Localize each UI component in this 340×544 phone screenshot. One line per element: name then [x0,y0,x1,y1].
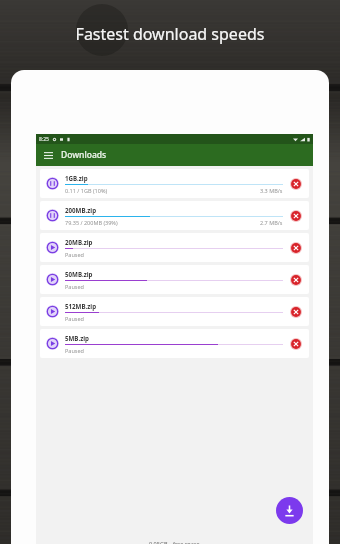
button[interactable]: Pause download [45,176,60,191]
button[interactable]: Pause download [45,208,60,223]
staticText: 20MB.zip [65,238,93,246]
button[interactable]: Cancel download [288,272,304,288]
staticText: Paused [65,251,84,258]
staticText: 0.11 / 1GB (10%) [65,187,108,194]
button[interactable]: Pause download [40,201,309,230]
staticText: Paused [65,315,84,322]
staticText: 79.35 / 200MB (39%) [65,219,118,226]
staticText: 8:25 [39,136,49,143]
staticText: 5MB.zip [65,334,89,342]
staticText: Paused [65,347,84,354]
button[interactable]: Resume download [45,304,60,319]
button[interactable]: Cancel download [288,336,304,352]
staticText: 50MB.zip [65,270,93,278]
staticText: Fastest download speeds [0,23,340,45]
button[interactable]: Resume download [40,265,309,294]
button[interactable]: Resume download [45,336,60,351]
button[interactable]: Resume download [40,329,309,358]
staticText: Paused [65,283,84,290]
button[interactable]: Cancel download [288,304,304,320]
staticText: 1GB.zip [65,174,88,182]
staticText: 3.3 MB/s [260,187,283,194]
staticText: Downloads [61,149,107,161]
button[interactable]: Cancel download [288,208,304,224]
button[interactable]: Resume download [40,233,309,262]
button[interactable]: Cancel download [288,176,304,192]
button[interactable]: Resume download [40,297,309,326]
button[interactable]: Open navigation menu [42,149,55,162]
staticText: 200MB.zip [65,206,97,214]
button[interactable]: Pause download [40,169,309,198]
staticText: 9.05GB [149,540,168,544]
button[interactable]: Resume download [45,272,60,287]
button[interactable]: Resume download [45,240,60,255]
button[interactable]: Cancel download [288,240,304,256]
button[interactable]: New download [276,497,303,524]
staticText: 512MB.zip [65,302,97,310]
staticText: 2.7 MB/s [260,219,283,226]
staticText: free space [173,540,200,544]
